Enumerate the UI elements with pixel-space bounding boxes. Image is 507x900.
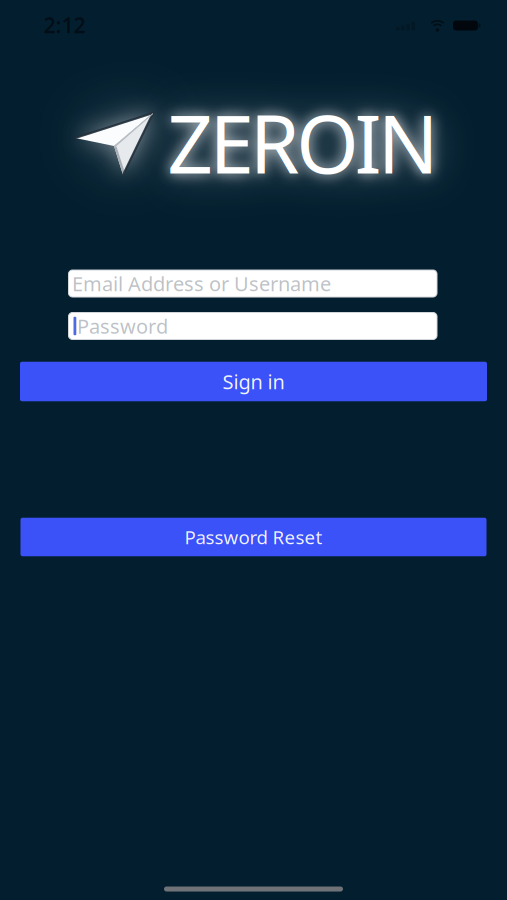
staticText: 2:12 [43, 11, 85, 39]
staticText: ZEROIN [167, 89, 439, 196]
staticText: Password [77, 313, 168, 339]
button[interactable]: Password [68, 312, 437, 339]
button[interactable]: Password Reset [20, 518, 486, 556]
button[interactable]: Email Address or Username [68, 270, 437, 297]
staticText: Sign in [222, 368, 284, 395]
staticText: Password Reset [184, 525, 322, 549]
staticText: Email Address or Username [72, 270, 331, 297]
button[interactable]: Sign in [20, 362, 487, 401]
